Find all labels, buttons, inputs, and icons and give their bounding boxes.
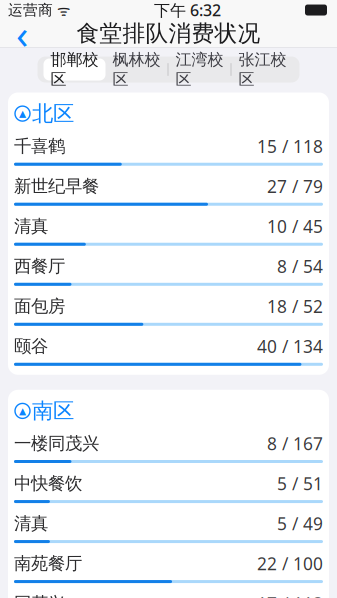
staticText: 18 / 52 [267, 295, 323, 318]
staticText: 清真 [14, 513, 48, 534]
button[interactable]: 面包房 [14, 289, 323, 329]
staticText: 枫林校区 [112, 50, 160, 89]
button[interactable]: 西餐厅 [14, 249, 323, 289]
staticText: 西餐厅 [14, 256, 65, 277]
staticText: 17 / 113 [257, 592, 323, 598]
staticText: ▲ [19, 406, 26, 416]
staticText: 张江校区 [238, 50, 286, 89]
staticText: 邯郸校区 [50, 50, 98, 89]
button[interactable]: 张江校区 [231, 58, 293, 80]
button[interactable]: 邯郸校区 [43, 58, 105, 80]
staticText: 食堂排队消费状况 [76, 20, 260, 47]
staticText: ‹ [16, 7, 28, 60]
staticText: 40 / 134 [257, 335, 323, 358]
button[interactable]: 一楼同茂兴 [14, 426, 323, 466]
staticText: 15 / 118 [257, 135, 323, 158]
button[interactable]: 江湾校区 [168, 58, 230, 80]
button[interactable]: 新世纪早餐 [14, 169, 323, 209]
staticText: 运营商 [8, 1, 53, 19]
staticText: 22 / 100 [257, 552, 323, 575]
staticText: 清真 [14, 216, 48, 237]
staticText: 颐谷 [14, 336, 48, 357]
staticText: 同茂兴 [14, 593, 65, 598]
button[interactable]: 清真 [14, 209, 323, 249]
staticText: 8 / 167 [267, 432, 323, 455]
staticText: ᯤ [53, 0, 70, 20]
staticText: 南区 [32, 398, 74, 424]
staticText: 面包房 [14, 296, 65, 317]
staticText: 27 / 79 [267, 175, 323, 198]
button[interactable]: 清真 [14, 506, 323, 546]
button[interactable]: 同茂兴 [14, 586, 323, 598]
button[interactable]: 枫林校区 [105, 58, 167, 80]
staticText: 中快餐饮 [14, 473, 82, 494]
staticText: 8 / 54 [277, 255, 323, 278]
button[interactable]: 千喜鹤 [14, 129, 323, 169]
staticText: 新世纪早餐 [14, 176, 99, 197]
staticText: 下午 6:32 [154, 0, 221, 21]
staticText: 一楼同茂兴 [14, 433, 99, 454]
staticText: ▲ [19, 108, 26, 119]
staticText: 5 / 51 [277, 472, 323, 495]
staticText: 南苑餐厅 [14, 553, 82, 574]
staticText: 千喜鹤 [14, 136, 65, 157]
button[interactable]: 南苑餐厅 [14, 546, 323, 586]
staticText: 10 / 45 [267, 215, 323, 238]
button[interactable]: 中快餐饮 [14, 466, 323, 506]
staticText: 江湾校区 [175, 50, 223, 89]
staticText: 北区 [32, 100, 74, 127]
button[interactable]: 返回 [0, 19, 44, 47]
staticText: 5 / 49 [277, 512, 323, 535]
button[interactable]: 颐谷 [14, 329, 323, 369]
